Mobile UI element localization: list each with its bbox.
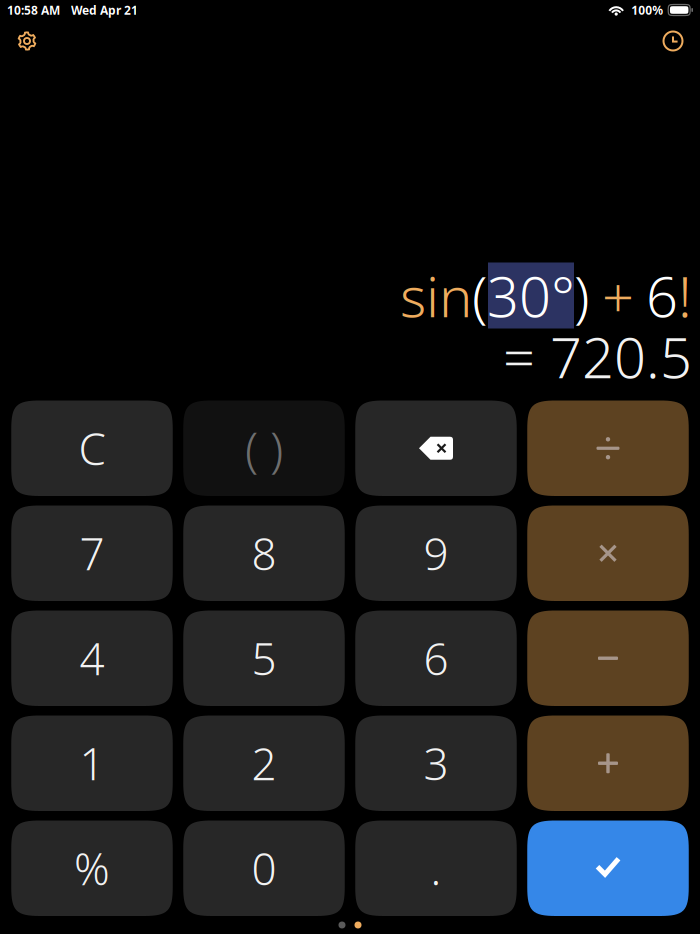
staticText: % [74,838,110,898]
staticText: 30° [487,257,575,334]
staticText: 1 [79,733,104,793]
staticText: 4 [79,628,104,688]
staticText: sin [400,257,472,334]
staticText: ( [472,257,488,334]
button[interactable]: 0 [183,820,345,916]
button[interactable]: . [355,820,517,916]
button[interactable]: Add [527,715,689,811]
staticText: 10:58 AM [7,2,60,18]
staticText: 5 [251,628,276,688]
button[interactable]: 7 [11,505,173,601]
staticText: . [430,838,441,898]
button[interactable]: Settings [9,21,45,61]
staticText: Wed Apr 21 [71,2,138,18]
staticText: 100% [631,2,663,18]
button[interactable]: Multiply [527,505,689,601]
button[interactable]: Divide [527,400,689,496]
staticText: 9 [423,523,448,583]
button[interactable]: 2 [183,715,345,811]
staticText: C [78,418,105,478]
button[interactable]: 4 [11,610,173,706]
button[interactable]: History [655,21,691,61]
button[interactable]: 1 [11,715,173,811]
staticText: 6 [423,628,448,688]
staticText: 2 [251,733,276,793]
button[interactable]: Subtract [527,610,689,706]
button[interactable]: 9 [355,505,517,601]
button[interactable]: Equals [527,820,689,916]
button[interactable]: Parentheses [183,400,345,496]
staticText: ! [678,257,692,334]
staticText: 6 [646,257,678,334]
button[interactable]: 6 [355,610,517,706]
button[interactable]: Delete [355,400,517,496]
staticText: ( ) [245,416,283,481]
button[interactable]: C [11,400,173,496]
staticText: 3 [423,733,448,793]
staticText: ) [574,257,590,334]
staticText: 8 [251,523,276,583]
staticText: + [587,257,649,334]
staticText: 7 [79,523,104,583]
staticText: 0 [251,838,276,898]
button[interactable]: 8 [183,505,345,601]
button[interactable]: 5 [183,610,345,706]
staticText: = 720.5 [503,318,692,395]
button[interactable]: 3 [355,715,517,811]
button[interactable]: % [11,820,173,916]
